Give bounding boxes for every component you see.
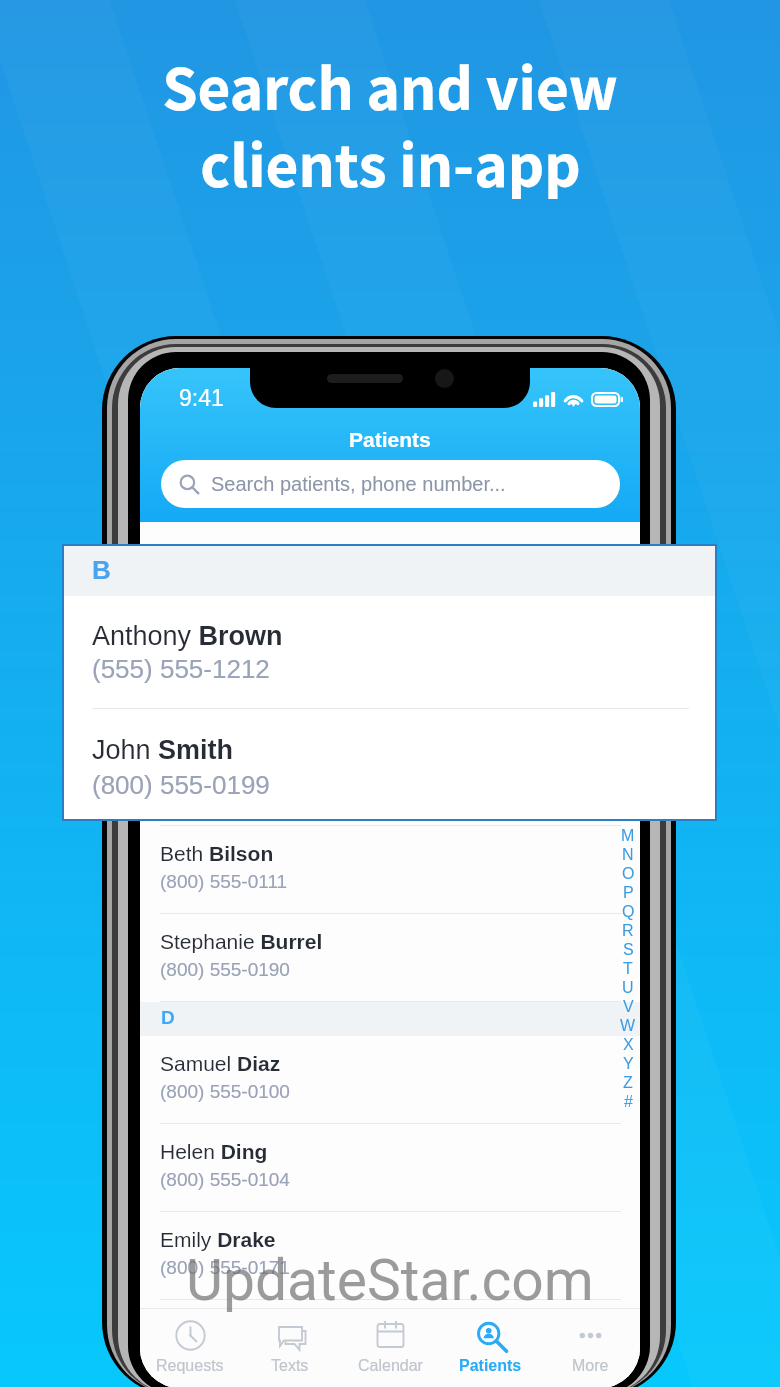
staticText: (800) 555-0100: [160, 1081, 290, 1102]
staticText: Y: [623, 1055, 634, 1073]
staticText: (555) 555-1212: [92, 654, 270, 683]
staticText: M: [621, 827, 635, 845]
staticText: More: [572, 1357, 609, 1375]
staticText: Stephanie Burrel: [160, 930, 323, 953]
staticText: (800) 555-0190: [160, 959, 290, 980]
button[interactable]: Stephanie Burrel: [140, 914, 640, 1002]
staticText: Patients: [459, 1357, 522, 1375]
staticText: (800) 555-0199: [92, 770, 270, 799]
button[interactable]: Helen Ding: [140, 1124, 640, 1212]
button[interactable]: More: [540, 1309, 640, 1375]
staticText: Samuel Diaz: [160, 1052, 281, 1075]
button[interactable]: Alphabet index: [617, 826, 639, 1111]
staticText: O: [622, 865, 635, 883]
staticText: R: [622, 922, 634, 940]
staticText: Patients: [349, 428, 431, 451]
staticText: John Smith: [160, 754, 270, 777]
other: Patients: [476, 1321, 505, 1350]
button[interactable]: Samuel Diaz: [140, 1036, 640, 1124]
staticText: B: [92, 555, 111, 584]
button[interactable]: Anthony Brown: [140, 650, 640, 738]
staticText: Z: [623, 1074, 633, 1092]
staticText: Search and view: [162, 45, 618, 129]
staticText: clients in-app: [200, 122, 581, 206]
staticText: W: [620, 1017, 636, 1035]
staticText: Search patients, phone number...: [211, 473, 506, 495]
staticText: #: [624, 1093, 633, 1111]
staticText: B: [161, 621, 175, 642]
staticText: Anthony Brown: [92, 621, 283, 651]
button[interactable]: John Smith: [140, 738, 640, 826]
staticText: Beth Bilson: [160, 842, 274, 865]
staticText: (555) 555-1212: [160, 695, 290, 716]
staticText: John Smith: [92, 735, 234, 765]
staticText: (800) 555-0171: [160, 1257, 290, 1278]
button[interactable]: Emily Drake: [140, 1212, 640, 1300]
staticText: UpdateStar.com: [186, 1247, 594, 1314]
staticText: Texts: [271, 1357, 309, 1375]
staticText: S: [623, 941, 634, 959]
staticText: P: [623, 884, 634, 902]
staticText: V: [623, 998, 634, 1016]
staticText: (800) 555-0111: [160, 871, 288, 892]
button[interactable]: Search patients, phone number...: [161, 460, 620, 508]
staticText: U: [622, 979, 634, 997]
button[interactable]: Patients: [440, 1309, 540, 1375]
staticText: Anthony Brown: [160, 666, 309, 689]
staticText: D: [161, 1007, 175, 1028]
staticText: Emily Drake: [160, 1228, 276, 1251]
other: Texts: [276, 1321, 305, 1350]
staticText: N: [622, 846, 634, 864]
staticText: (800) 555-0199: [160, 783, 290, 804]
staticText: Helen Ding: [160, 1140, 268, 1163]
staticText: Q: [622, 903, 635, 921]
staticText: 9:41: [179, 385, 224, 411]
staticText: Calendar: [358, 1357, 423, 1375]
other: Requests: [176, 1321, 205, 1350]
staticText: Requests: [156, 1357, 224, 1375]
button[interactable]: Requests: [140, 1309, 240, 1375]
button[interactable]: Texts: [240, 1309, 340, 1375]
staticText: (800) 555-0104: [160, 1169, 290, 1190]
staticText: X: [623, 1036, 634, 1054]
other: Calendar: [376, 1321, 405, 1350]
button[interactable]: Calendar: [340, 1309, 440, 1375]
other: More: [576, 1321, 605, 1350]
staticText: T: [623, 960, 633, 978]
button[interactable]: Beth Bilson: [140, 826, 640, 914]
